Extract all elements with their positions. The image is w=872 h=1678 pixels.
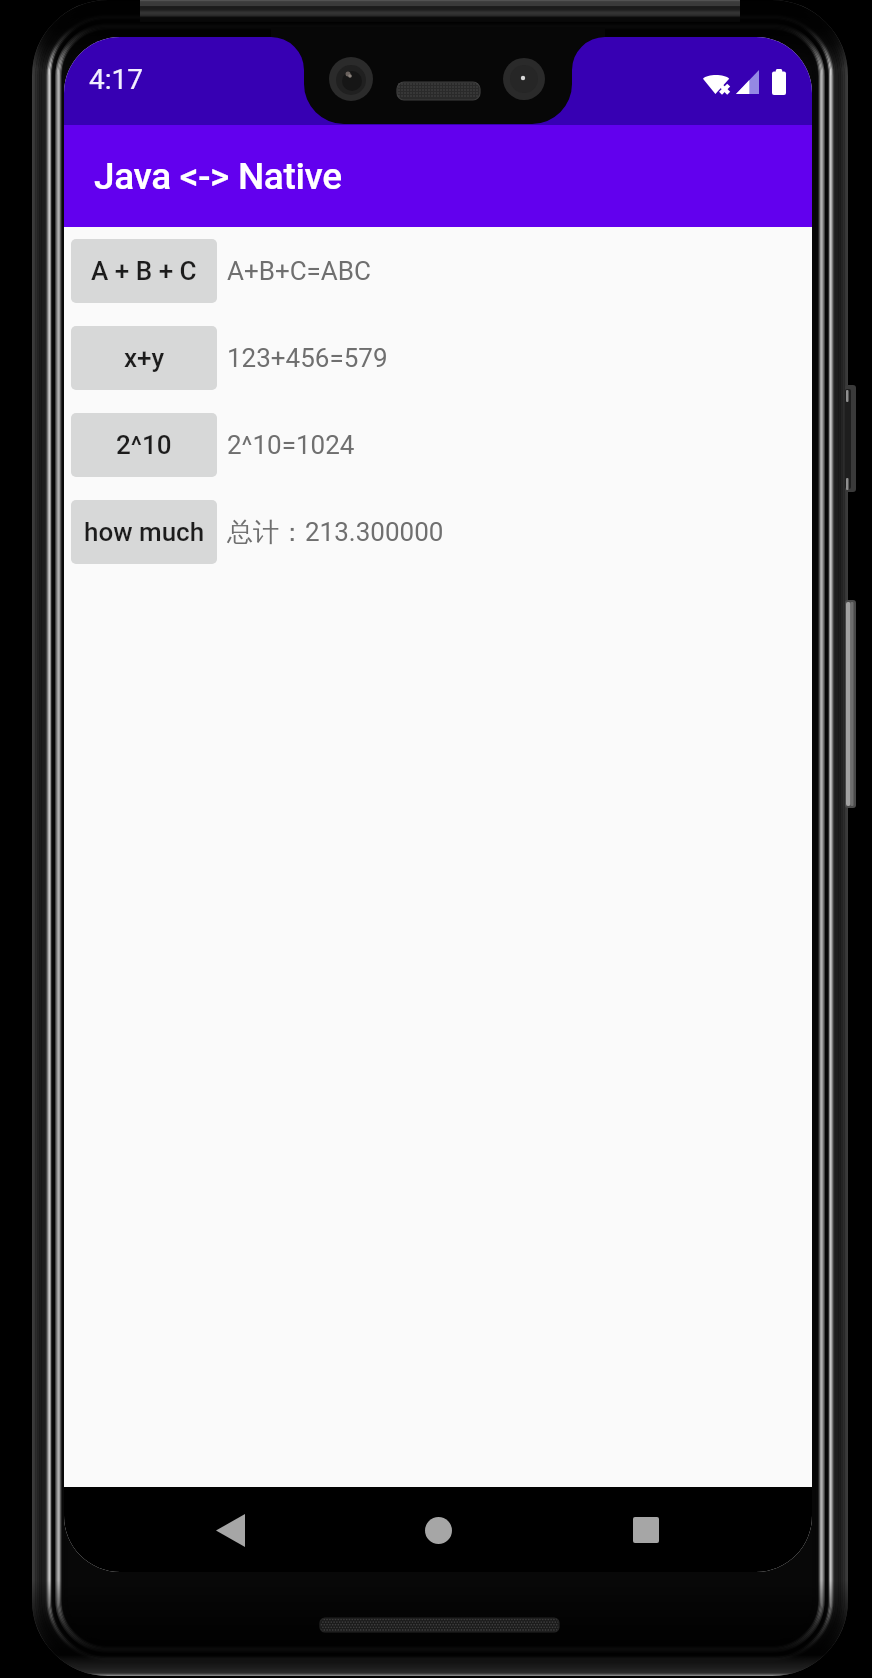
button[interactable]: Back [202,1502,258,1558]
staticText: Java <-> Native [94,155,342,198]
button[interactable]: Recent apps [618,1502,674,1558]
button[interactable]: x+y [71,326,217,390]
button[interactable]: how much [71,500,217,564]
staticText: x+y [124,343,165,373]
button[interactable]: Home [410,1502,466,1558]
staticText: 123+456=579 [227,343,388,373]
button[interactable]: 2^10 [71,413,217,477]
staticText: A + B + C [91,256,197,286]
staticText: how much [84,517,205,547]
staticText: 2^10=1024 [227,430,355,460]
button[interactable]: A + B + C [71,239,217,303]
staticText: 4:17 [89,63,143,96]
staticText: A+B+C=ABC [227,256,371,286]
staticText: 总计：213.300000 [227,516,444,549]
staticText: 2^10 [116,430,172,460]
